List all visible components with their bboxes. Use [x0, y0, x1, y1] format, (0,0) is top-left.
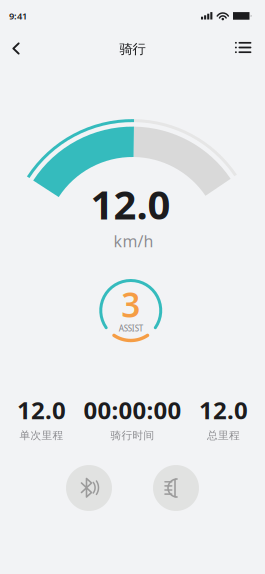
- button[interactable]: Back: [1, 35, 31, 61]
- staticText: 9:41: [9, 10, 27, 22]
- staticText: ASSIST: [119, 323, 143, 334]
- staticText: 12.0: [17, 394, 66, 426]
- staticText: 总里程: [207, 429, 240, 442]
- staticText: 00:00:00: [83, 394, 181, 426]
- staticText: km/h: [113, 230, 153, 252]
- staticText: 骑行: [119, 41, 145, 57]
- button[interactable]: Menu: [228, 34, 258, 60]
- button[interactable]: Bluetooth: [66, 465, 112, 511]
- button[interactable]: Headlight: [153, 465, 199, 511]
- staticText: 单次里程: [19, 429, 63, 442]
- staticText: 3: [121, 282, 140, 327]
- staticText: 骑行时间: [110, 429, 154, 442]
- staticText: 12.0: [199, 394, 248, 426]
- staticText: 12.0: [90, 177, 170, 230]
